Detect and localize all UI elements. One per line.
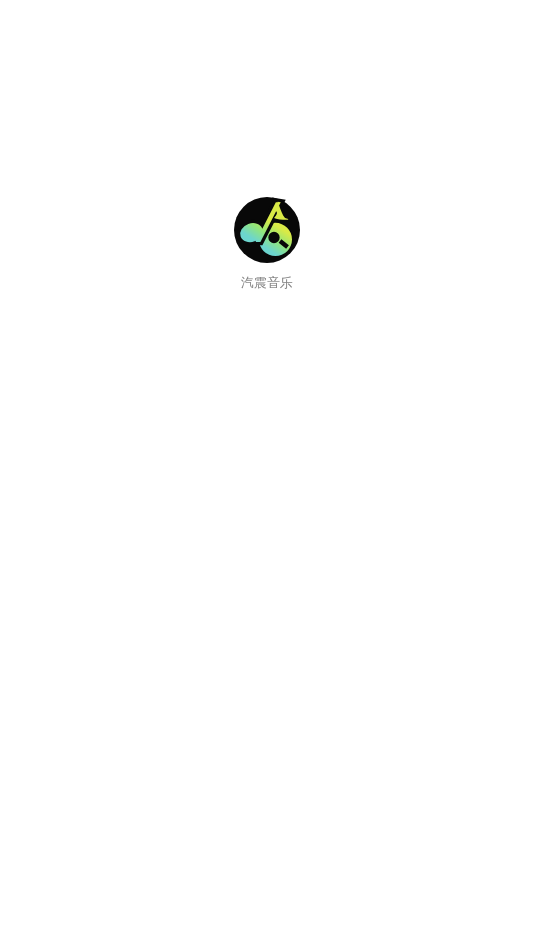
button[interactable]: 汽震音乐	[234, 197, 300, 263]
staticText: 汽震音乐	[241, 274, 293, 290]
